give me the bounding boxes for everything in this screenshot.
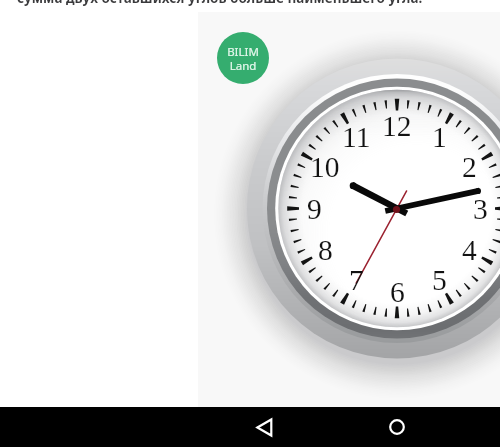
- button[interactable]: BILIM Land: [217, 32, 269, 84]
- staticText: 9: [307, 193, 322, 226]
- staticText: 4: [462, 234, 477, 267]
- button[interactable]: Back: [244, 407, 284, 447]
- staticText: 3: [473, 193, 488, 226]
- staticText: 12: [382, 110, 412, 143]
- staticText: 5: [432, 264, 447, 297]
- staticText: 11: [342, 121, 371, 154]
- button[interactable]: Home: [377, 407, 417, 447]
- staticText: BILIM Land: [227, 44, 259, 73]
- staticText: сумма двух оставшихся углов больше наиме…: [17, 0, 423, 7]
- staticText: 2: [462, 151, 477, 184]
- staticText: 6: [390, 276, 405, 309]
- staticText: 7: [349, 264, 364, 297]
- staticText: 8: [318, 234, 333, 267]
- staticText: 10: [310, 151, 340, 184]
- staticText: 1: [432, 121, 447, 154]
